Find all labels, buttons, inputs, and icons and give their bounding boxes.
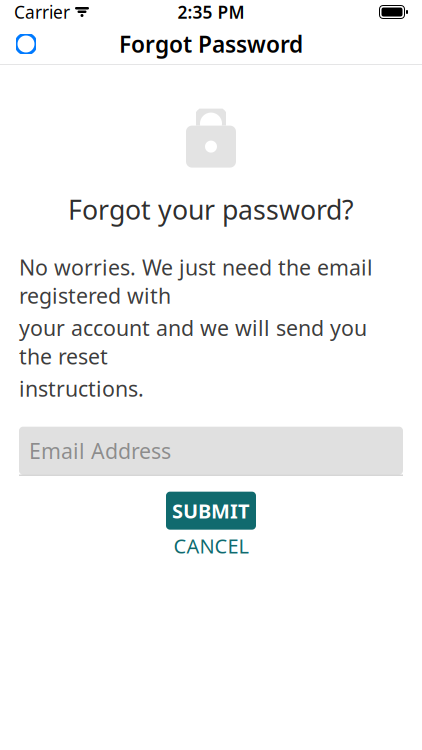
staticText: CANCEL — [173, 532, 248, 559]
staticText: instructions. — [19, 374, 144, 403]
staticText: SUBMIT — [172, 497, 250, 524]
staticText: No worries. We just need the email regis… — [19, 253, 373, 310]
staticText: Forgot Password — [119, 29, 303, 59]
staticText: Forgot your password? — [68, 192, 354, 227]
staticText: Email Address — [29, 436, 171, 465]
button[interactable]: CANCEL — [151, 533, 271, 559]
button[interactable]: Back — [0, 24, 42, 64]
staticText: 2:35 PM — [177, 0, 244, 23]
staticText: Carrier — [14, 0, 70, 23]
staticText: your account and we will send you the re… — [19, 314, 367, 370]
button[interactable]: SUBMIT — [166, 492, 256, 530]
